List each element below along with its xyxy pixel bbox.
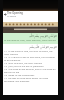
button[interactable]: Back [3, 11, 58, 18]
staticText: In the name of Allah, Most Gracious, Mos… [4, 39, 57, 42]
button[interactable]: 1:6 Guide us the straight way [4, 74, 57, 77]
staticText: 1:3 Most Gracious, the Most Merciful [4, 62, 43, 65]
staticText: 1:1 In the name of God, the Most Graciou… [4, 50, 57, 56]
staticText: 1:2 ALL PRAISE is due to God alone, the … [4, 56, 57, 62]
staticText: 1:5 You alone do we worship, and to You … [4, 68, 57, 74]
button[interactable]: 1:2 ALL PRAISE is due to God alone, the … [4, 56, 57, 62]
button[interactable]: 1:7 the way of those upon whom You have … [4, 77, 57, 83]
staticText: 1:7 the way of those upon whom You have … [4, 77, 57, 83]
button[interactable]: 1:3 Most Gracious, the Most Merciful [4, 62, 57, 65]
staticText: Al-Fatiha [7, 15, 16, 18]
staticText: The Opening [7, 11, 23, 15]
staticText: الرَّحِيمِ الرَّحْمَٰنِ اللَّهِ بِسْمِ [4, 45, 57, 49]
staticText: الرَّحْمَٰنِ الرَّحِيمِ بِسْمِ اللَّهِ [4, 34, 57, 38]
button[interactable]: Back [3, 11, 7, 18]
button[interactable]: 1:4 (You) Lord of the Day of Judgment! [4, 65, 57, 68]
staticText: 1:6 Guide us the straight way [4, 74, 35, 77]
button[interactable]: 1:5 You alone do we worship, and to You … [4, 68, 57, 74]
staticText: 1:4 (You) Lord of the Day of Judgment! [4, 65, 44, 68]
button[interactable]: 1:1 In the name of God, the Most Graciou… [4, 50, 57, 56]
